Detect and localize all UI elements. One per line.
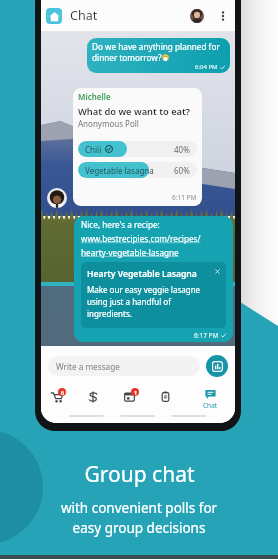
staticText: www.bestrecipies.com/recipes/ hearty-veg… [81,233,201,258]
staticText: Group chat [84,460,195,489]
button[interactable]: Lists [148,380,182,412]
staticText: Vegetable lasagna [85,165,154,176]
staticText: with convenient polls for easy group dec… [0,499,278,537]
button[interactable]: Hearty Vegetable Lasagna [81,262,226,328]
button[interactable]: Nice, here's a recipe: [74,216,233,342]
button[interactable]: Close [214,268,221,275]
staticText: Chat [70,7,98,24]
button[interactable]: Vegetable lasagna [78,162,197,178]
staticText: 40% [174,144,190,155]
button[interactable]: Home [46,8,62,24]
staticText: Anonymous Poll [78,118,139,129]
button[interactable]: Create poll [206,355,228,377]
staticText: 6:17 PM [194,331,219,340]
button[interactable]: Chili [78,141,197,157]
button[interactable]: More options [216,9,230,23]
staticText: Chili [85,144,102,155]
button[interactable]: Chat [193,380,227,412]
staticText: Chat [203,401,218,410]
staticText: 60% [174,165,190,176]
button[interactable]: Calendar [112,380,146,412]
staticText: dinner tomorrow? [92,52,162,63]
staticText: Make our easy veggie lasagne using just … [87,284,201,319]
button[interactable]: Prices [76,380,110,412]
button[interactable]: Do we have anything planned for [87,38,230,73]
staticText: 1 [134,389,137,396]
staticText: What do we want to eat? [78,105,191,118]
staticText: Hearty Vegetable Lasagna [87,268,197,280]
button[interactable]: Profile [190,9,204,23]
staticText: Write a message [56,361,120,372]
button[interactable]: Write a message [48,356,200,376]
staticText: 6 [61,389,64,396]
staticText: 6:04 PM [195,63,218,71]
staticText: Nice, here's a recipe: [81,219,160,230]
button[interactable]: Michelle [73,88,202,206]
button[interactable]: Shopping cart [41,380,74,412]
staticText: Do we have anything planned for [92,41,220,52]
staticText: Michelle [78,91,111,102]
staticText: 6:11 PM [172,193,197,202]
